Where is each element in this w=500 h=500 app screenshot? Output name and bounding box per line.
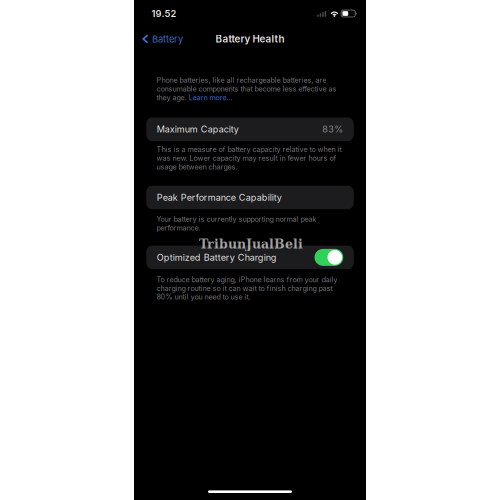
staticText: Maximum Capacity <box>157 124 239 135</box>
button[interactable]: Maximum Capacity <box>134 117 366 141</box>
staticText: TribunJualBeli <box>199 237 303 251</box>
staticText: Your battery is currently supporting nor… <box>156 215 316 232</box>
staticText: Optimized Battery Charging <box>157 252 277 263</box>
staticText: Battery <box>152 33 183 45</box>
staticText: 83% <box>322 124 343 135</box>
button[interactable]: Battery <box>134 28 189 50</box>
staticText: This is a measure of battery capacity re… <box>156 145 341 171</box>
staticText: 19.52 <box>152 8 177 19</box>
staticText: Phone batteries, like all rechargeable b… <box>156 76 336 102</box>
staticText: To reduce battery aging, iPhone learns f… <box>156 275 337 301</box>
button[interactable]: Peak Performance Capability <box>134 186 366 209</box>
button[interactable]: Optimized Battery Charging <box>134 246 366 269</box>
button[interactable]: Optimized Battery Charging <box>314 249 343 266</box>
staticText: Battery Health <box>215 33 284 45</box>
staticText: Peak Performance Capability <box>157 192 282 203</box>
